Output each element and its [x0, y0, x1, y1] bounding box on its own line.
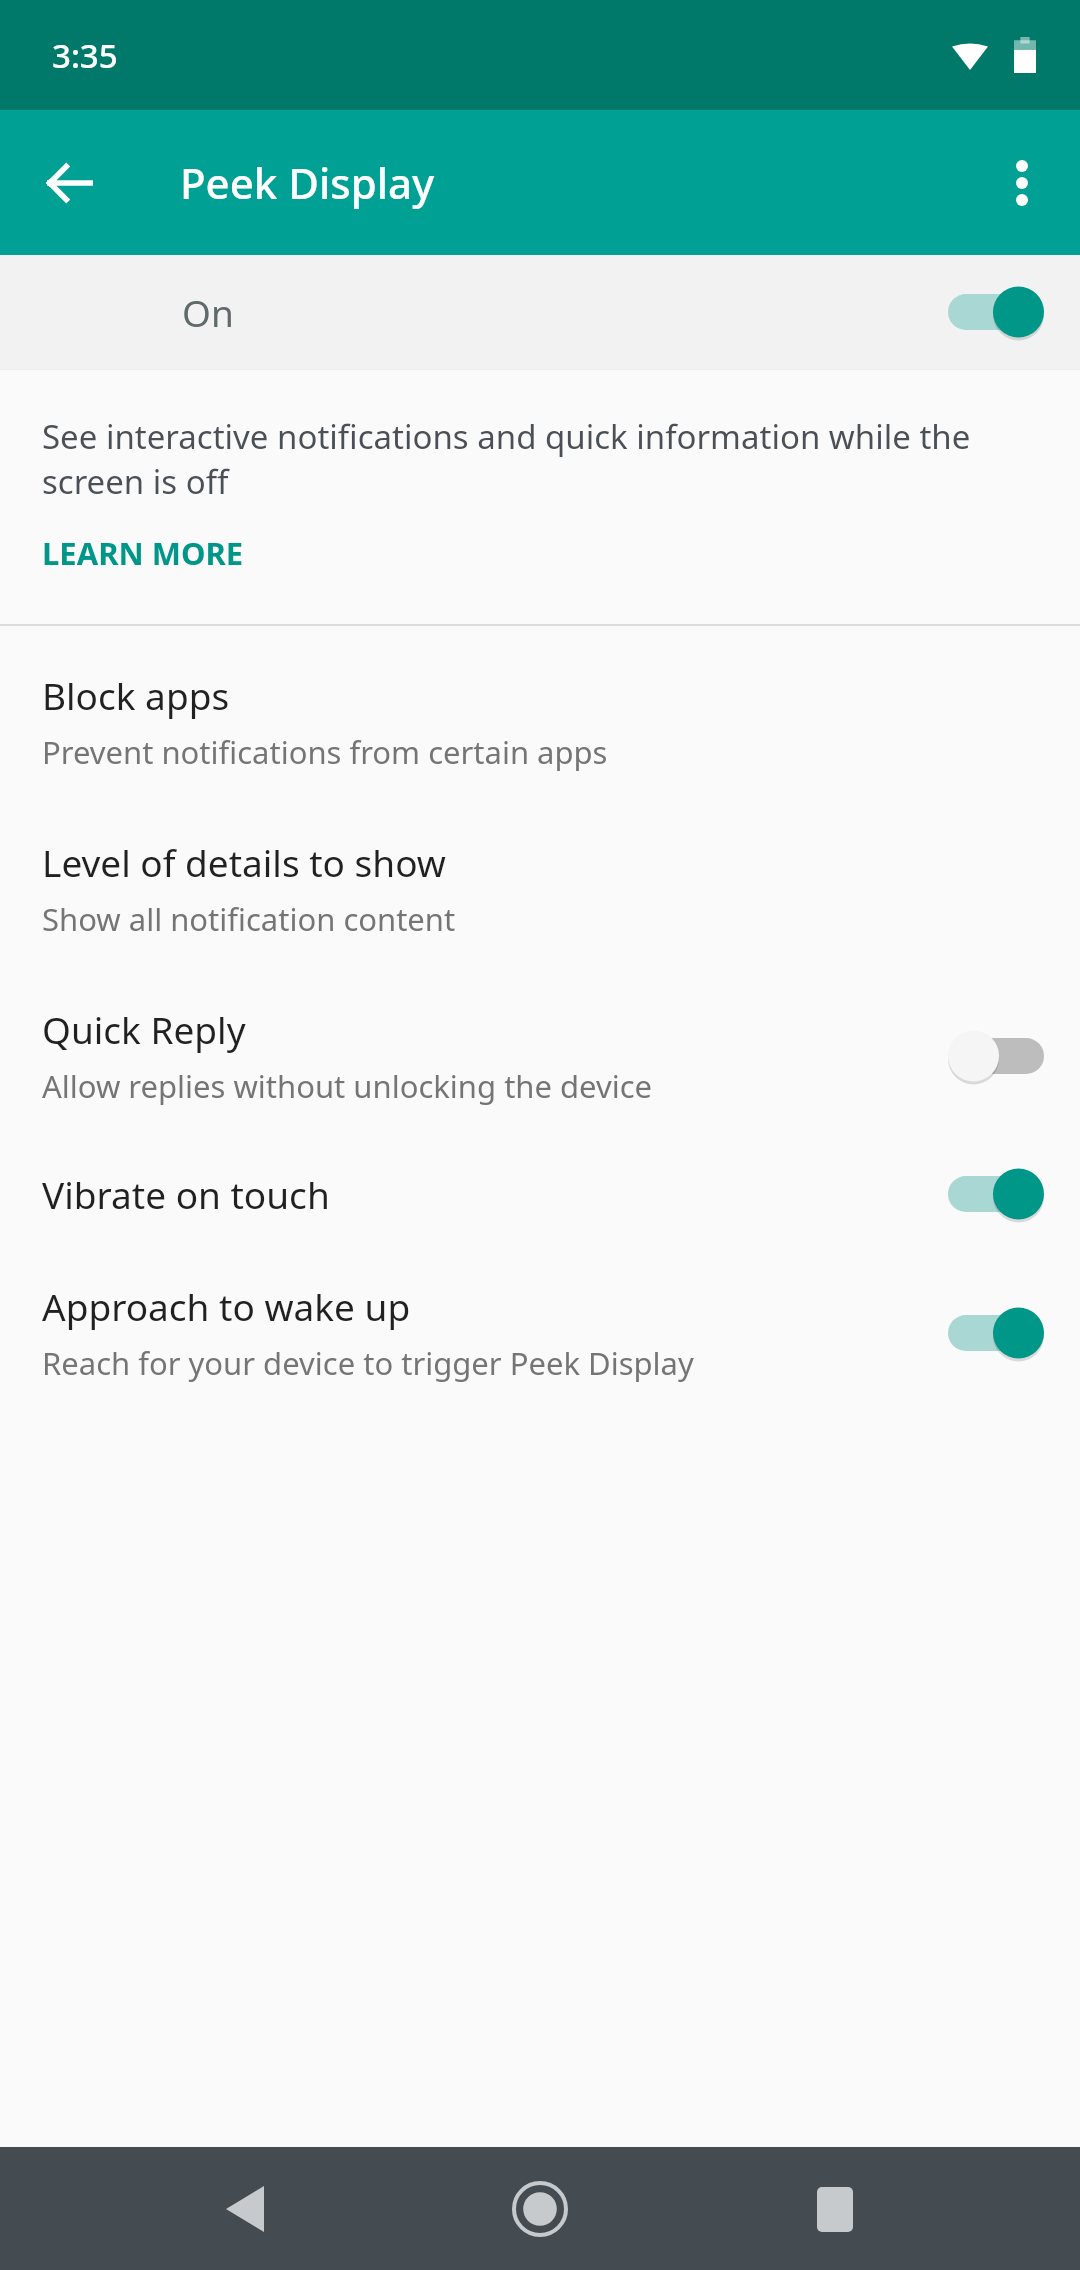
button[interactable]: Back [28, 141, 112, 225]
staticText: Reach for your device to trigger Peek Di… [42, 1342, 694, 1384]
button[interactable]: Quick Reply [0, 940, 1080, 1107]
staticText: Quick Reply [42, 1004, 246, 1054]
button[interactable]: Off [948, 1027, 1044, 1085]
button[interactable]: Vibrate on touch [0, 1107, 1080, 1223]
button[interactable]: Recent apps [780, 2154, 890, 2264]
button[interactable]: Back [190, 2154, 300, 2264]
button[interactable]: Approach to wake up [0, 1223, 1080, 1384]
staticText: 3:35 [52, 33, 118, 78]
button[interactable]: On [948, 1304, 1044, 1362]
staticText: Prevent notifications from certain apps [42, 731, 608, 773]
staticText: Approach to wake up [42, 1281, 411, 1331]
button[interactable]: Block apps [0, 626, 1080, 773]
staticText: Level of details to show [42, 837, 446, 887]
staticText: Peek Display [180, 154, 435, 211]
button[interactable]: On [0, 255, 1080, 369]
staticText: Show all notification content [42, 898, 456, 940]
button[interactable]: On [948, 283, 1044, 341]
staticText: Vibrate on touch [42, 1169, 330, 1219]
staticText: On [182, 287, 234, 337]
staticText: Allow replies without unlocking the devi… [42, 1065, 653, 1107]
staticText: Block apps [42, 670, 230, 720]
button[interactable]: LEARN MORE [42, 528, 244, 578]
button[interactable]: More options [980, 141, 1064, 225]
staticText: See interactive notifications and quick … [42, 414, 1020, 504]
staticText: LEARN MORE [42, 532, 244, 574]
button[interactable]: Home [485, 2154, 595, 2264]
button[interactable]: Level of details to show [0, 773, 1080, 940]
button[interactable]: On [948, 1165, 1044, 1223]
